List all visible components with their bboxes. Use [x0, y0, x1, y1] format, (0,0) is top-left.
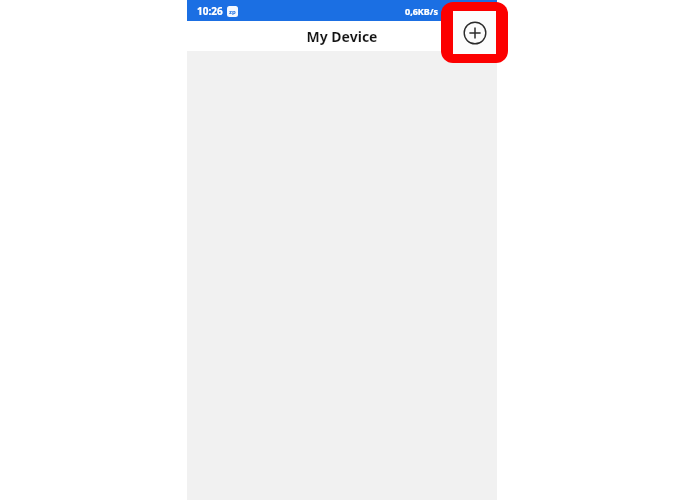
- button[interactable]: Add device: [453, 11, 496, 54]
- staticText: 0,6KB/s: [405, 5, 439, 17]
- staticText: 10:26: [197, 4, 223, 18]
- staticText: My Device: [187, 27, 497, 46]
- staticText: zp: [229, 8, 236, 16]
